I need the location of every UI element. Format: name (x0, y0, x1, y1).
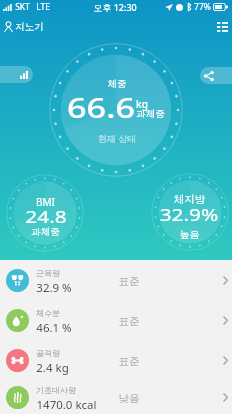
button[interactable]: Statistics (0, 66, 33, 83)
staticText: 2.4 kg (36, 360, 69, 376)
staticText: 표준 (114, 315, 144, 328)
staticText: 기초대사량 (36, 385, 76, 395)
staticText: 32.9 % (36, 280, 72, 296)
staticText: 1470.0 kcal (36, 397, 97, 413)
staticText: 체중 (102, 78, 132, 90)
staticText: BMI (15, 195, 76, 209)
staticText: kg (136, 97, 148, 111)
staticText: 골격량 (36, 348, 60, 358)
staticText: 높음 (159, 228, 220, 241)
staticText: 과체중 (15, 226, 76, 238)
button[interactable]: 기초대사량 (0, 380, 232, 414)
staticText: 근육량 (36, 268, 60, 278)
staticText: 오후 12:30 (93, 1, 137, 13)
button[interactable]: 체수분 (0, 300, 232, 340)
staticText: 32.9% (159, 204, 219, 226)
button[interactable]: 근육량 (0, 260, 232, 300)
staticText: 체수분 (36, 308, 60, 318)
staticText: 24.8 (25, 206, 67, 228)
button[interactable]: Share (200, 67, 232, 84)
staticText: 66.6 (67, 89, 135, 126)
button[interactable]: 지노기 (4, 18, 44, 36)
staticText: 낮음 (114, 392, 144, 405)
staticText: 현재 상태 (97, 132, 137, 144)
staticText: 체지방 (159, 193, 220, 206)
staticText: LTE (36, 1, 50, 13)
staticText: SKT (15, 1, 30, 13)
staticText: 표준 (114, 355, 144, 368)
staticText: 46.1 % (36, 320, 72, 336)
button[interactable]: Menu (211, 15, 232, 37)
staticText: 과체중 (136, 108, 165, 120)
button[interactable]: 골격량 (0, 340, 232, 380)
staticText: 지노기 (15, 21, 44, 33)
staticText: 77% (194, 1, 211, 13)
staticText: 표준 (114, 275, 144, 288)
